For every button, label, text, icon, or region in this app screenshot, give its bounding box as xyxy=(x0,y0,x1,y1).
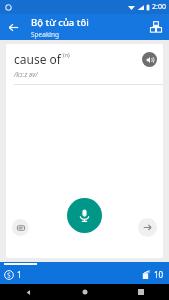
button[interactable]: Show card xyxy=(12,219,29,236)
button[interactable]: Back xyxy=(0,14,26,40)
button[interactable]: Flashcards xyxy=(143,14,169,40)
button[interactable]: Play pronunciation xyxy=(142,52,157,67)
button[interactable]: Record speech xyxy=(67,198,102,233)
staticText: (n) xyxy=(63,51,70,58)
staticText: Speaking xyxy=(31,30,60,39)
button[interactable]: Next xyxy=(138,218,157,237)
button[interactable]: 10 xyxy=(141,269,164,280)
button[interactable]: Home xyxy=(57,284,113,300)
staticText: /kɔːz əv/ xyxy=(14,70,38,79)
button[interactable]: Recents xyxy=(113,284,169,300)
staticText: 10 xyxy=(154,269,164,280)
staticText: Bộ từ của tôi xyxy=(31,16,89,29)
button[interactable]: Back xyxy=(0,284,57,300)
staticText: cause of xyxy=(14,51,61,67)
button[interactable]: 1 xyxy=(4,269,22,280)
staticText: 2:00 xyxy=(152,2,166,12)
staticText: 1 xyxy=(17,269,22,280)
